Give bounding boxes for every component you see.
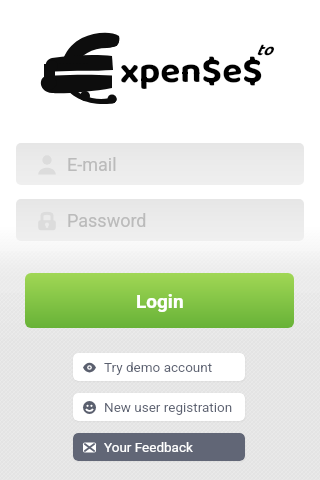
staticText: Password bbox=[67, 210, 147, 231]
button[interactable]: E-mail bbox=[16, 143, 304, 185]
staticText: E-mail bbox=[67, 154, 117, 175]
staticText: to bbox=[256, 37, 273, 64]
staticText: Try demo account bbox=[104, 359, 213, 375]
staticText: xpen$e$ bbox=[120, 42, 263, 101]
staticText: Login bbox=[136, 290, 184, 312]
button[interactable]: New user registration bbox=[73, 393, 245, 421]
staticText: New user registration bbox=[104, 399, 233, 415]
button[interactable]: Password bbox=[16, 199, 304, 241]
button[interactable]: Login bbox=[25, 273, 294, 328]
staticText: Your Feedback bbox=[104, 439, 193, 455]
button[interactable]: Your Feedback bbox=[73, 433, 245, 461]
button[interactable]: Try demo account bbox=[73, 353, 245, 381]
